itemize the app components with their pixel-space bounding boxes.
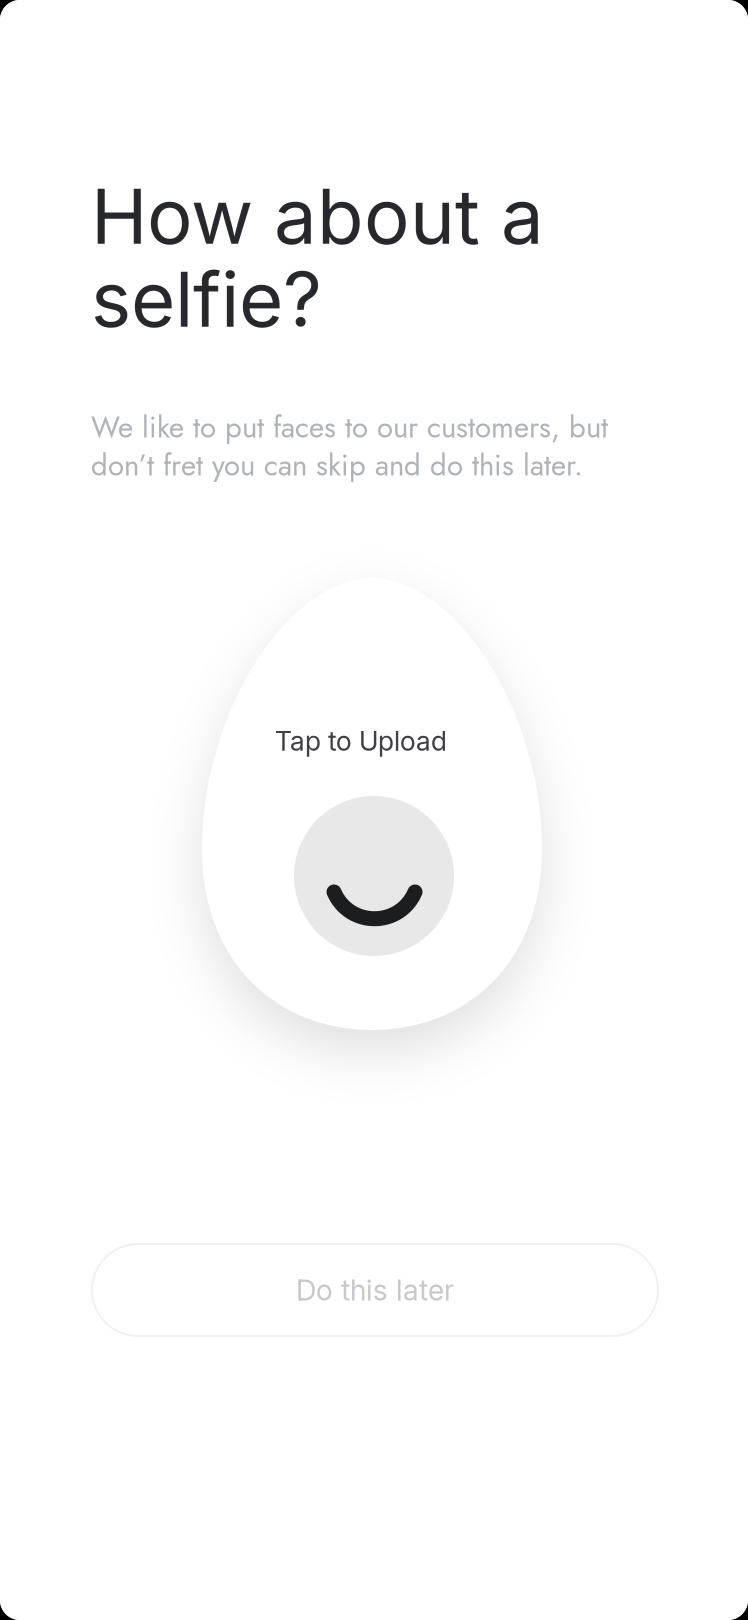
button[interactable]: Do this later [92,1244,658,1336]
staticText: selfie? [91,253,322,345]
staticText: How about a [91,170,544,262]
staticText: Do this later [296,1273,454,1307]
staticText: don’t fret you can skip and do this late… [91,444,583,486]
staticText: Tap to Upload [275,725,447,757]
button[interactable]: Tap to Upload [202,578,542,1030]
staticText: We like to put faces to our customers, b… [91,406,608,448]
